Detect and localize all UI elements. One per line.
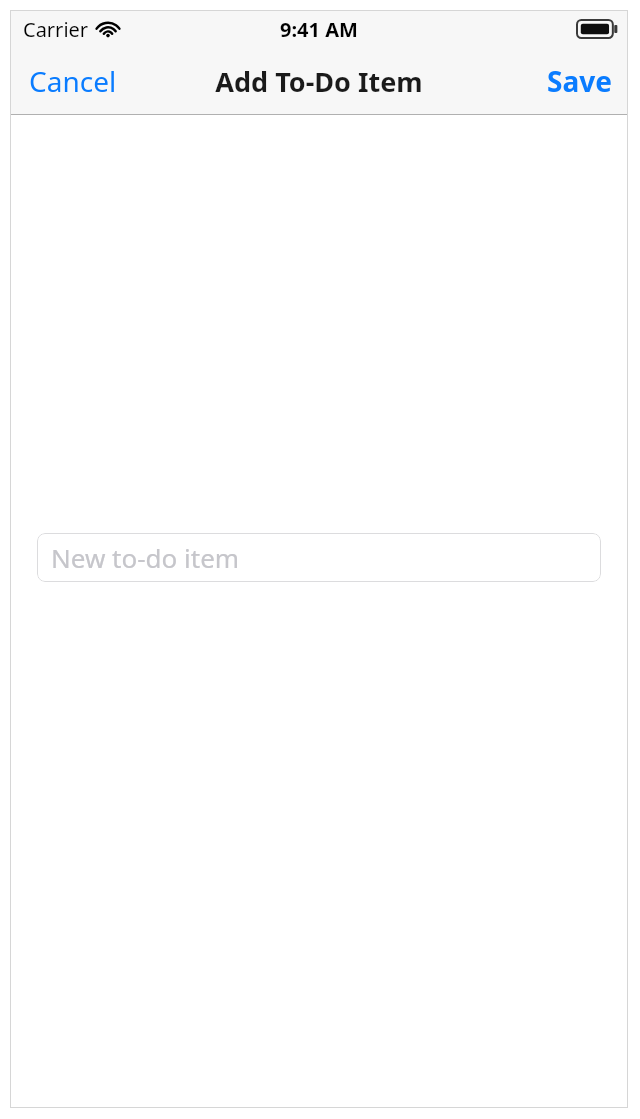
staticText: Add To-Do Item (10, 63, 628, 100)
staticText: 9:41 AM (280, 16, 358, 43)
staticText: Carrier (23, 16, 89, 43)
staticText: New to-do item (51, 540, 240, 575)
staticText: Save (547, 62, 612, 100)
staticText: Cancel (29, 62, 117, 100)
button[interactable]: New to-do item (37, 533, 601, 582)
button[interactable]: Cancel (10, 54, 131, 108)
button[interactable]: Save (533, 54, 628, 108)
